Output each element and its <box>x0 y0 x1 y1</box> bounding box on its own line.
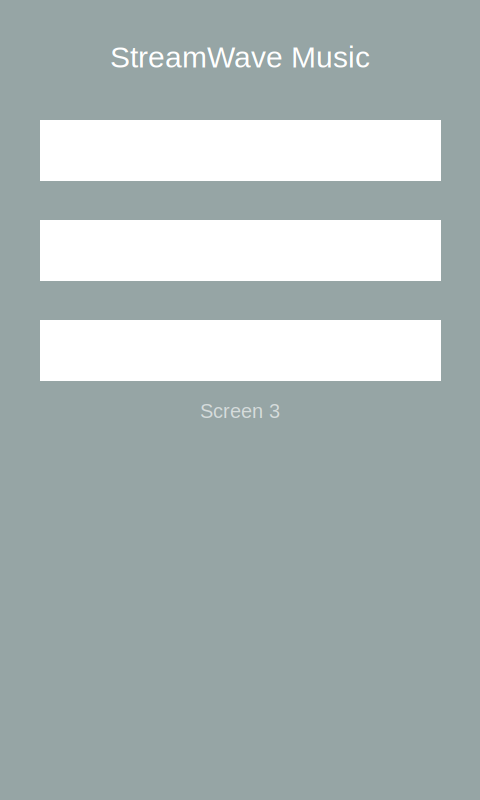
staticText: Screen 3 <box>200 400 280 422</box>
staticText: StreamWave Music <box>110 40 370 74</box>
